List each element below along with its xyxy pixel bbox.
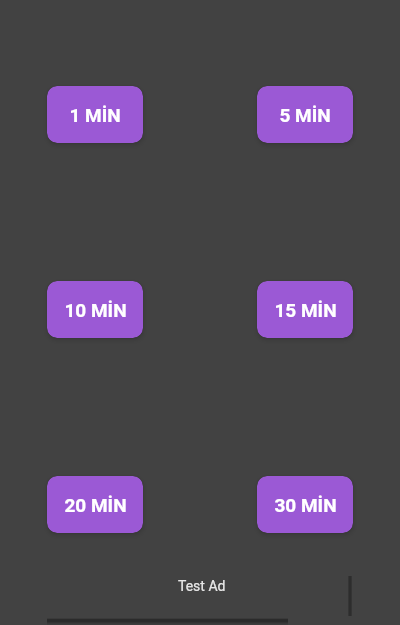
button[interactable]: 15 MİN — [257, 281, 353, 338]
staticText: 15 MİN — [274, 299, 337, 321]
button[interactable]: 1 MİN — [47, 86, 143, 143]
staticText: Test Ad — [178, 578, 226, 594]
button[interactable]: 20 MİN — [47, 476, 143, 533]
staticText: 20 MİN — [64, 494, 127, 516]
button[interactable]: 5 MİN — [257, 86, 353, 143]
staticText: 5 MİN — [279, 104, 331, 126]
staticText: 10 MİN — [64, 299, 127, 321]
button[interactable]: 10 MİN — [47, 281, 143, 338]
staticText: 1 MİN — [69, 104, 121, 126]
button[interactable]: 30 MİN — [257, 476, 353, 533]
staticText: 30 MİN — [274, 494, 337, 516]
